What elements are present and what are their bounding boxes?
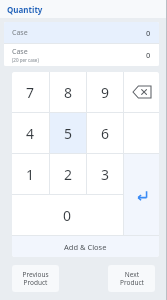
staticText: 6 [101,124,110,143]
staticText: 5 [64,124,73,143]
button[interactable]: Case [4,44,159,66]
button[interactable]: 6 [87,113,123,153]
staticText: Previous Product [22,270,49,287]
staticText: 0 [146,50,151,60]
button[interactable]: Enter [124,154,159,235]
staticText: 4 [26,124,35,143]
button[interactable]: 2 [50,154,86,194]
staticText: 3 [101,165,110,184]
button[interactable]: 8 [50,72,86,112]
button[interactable]: Backspace [124,72,159,112]
staticText: 0 [146,28,151,38]
staticText: Quantity [7,4,43,15]
button[interactable]: 4 [12,113,49,153]
staticText: 8 [64,83,73,102]
staticText: 7 [26,83,35,102]
staticText: 9 [101,83,110,102]
staticText: Case [12,28,28,38]
staticText: Add & Close [64,242,107,252]
button[interactable]: Case [4,22,159,43]
staticText: 0 [63,206,72,225]
staticText: (20 per case) [12,57,39,63]
button[interactable]: 7 [12,72,49,112]
staticText: 1 [26,165,35,184]
staticText: Next Product [120,270,144,287]
button[interactable]: Add & Close [12,236,159,257]
staticText: 2 [64,165,73,184]
button[interactable]: 9 [87,72,123,112]
button[interactable]: Previous Product [12,265,59,292]
staticText: Case [12,47,28,57]
button[interactable]: Next Product [108,265,155,292]
button[interactable]: 3 [87,154,123,194]
button[interactable]: 1 [12,154,49,194]
button[interactable]: 0 [12,195,123,235]
button[interactable]: 5 [50,113,86,153]
